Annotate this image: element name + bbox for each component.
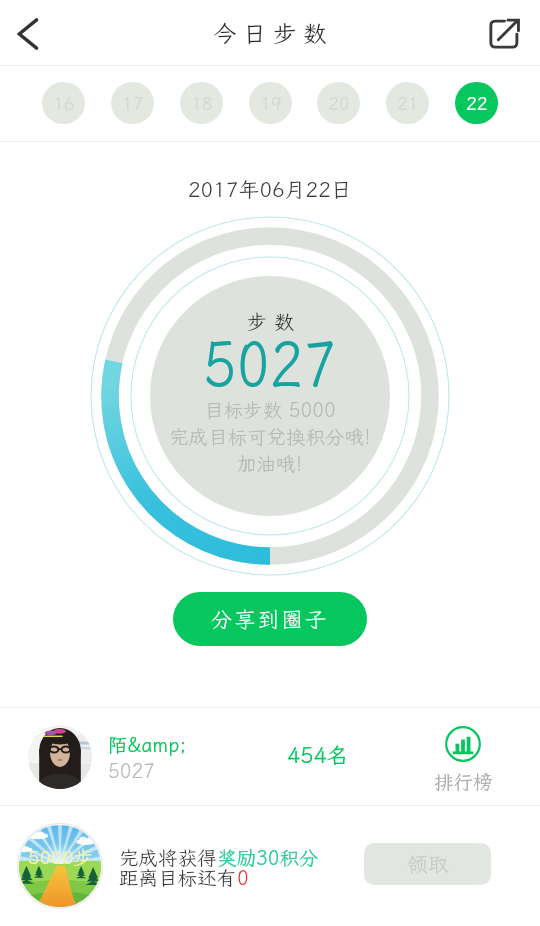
staticText: 18: [191, 91, 213, 115]
staticText: 加油哦!: [237, 451, 303, 477]
staticText: 步 数: [247, 308, 294, 334]
button[interactable]: 18: [180, 82, 223, 124]
staticText: 5027: [108, 758, 155, 784]
staticText: 奖励30积分: [217, 845, 319, 871]
staticText: 完成将获得: [119, 845, 217, 871]
button[interactable]: 17: [111, 82, 154, 124]
staticText: 目标步数 5000: [204, 397, 336, 423]
button[interactable]: Share: [478, 7, 531, 60]
staticText: 距离目标还有: [119, 865, 237, 891]
button[interactable]: 陌&amp;: [0, 708, 410, 805]
staticText: 16: [53, 91, 75, 115]
button[interactable]: 16: [42, 82, 85, 124]
button[interactable]: 领取: [364, 843, 491, 885]
staticText: 21: [397, 91, 419, 115]
staticText: 2017年06月22日: [188, 175, 352, 203]
staticText: 5000步: [28, 844, 93, 869]
button[interactable]: Back: [0, 7, 53, 60]
button[interactable]: 19: [249, 82, 292, 124]
button[interactable]: 分享到圈子: [173, 592, 367, 646]
staticText: 5027: [203, 320, 337, 404]
staticText: 陌&amp;: [108, 732, 187, 758]
staticText: 今日步数: [213, 18, 333, 49]
staticText: 19: [260, 91, 282, 115]
staticText: 22: [466, 91, 488, 115]
button[interactable]: 20: [317, 82, 360, 124]
staticText: 20: [328, 91, 350, 115]
staticText: 排行榜: [434, 769, 493, 795]
staticText: 领取: [407, 850, 449, 878]
staticText: 17: [122, 91, 144, 115]
staticText: 分享到圈子: [211, 605, 329, 633]
staticText: 0: [237, 865, 249, 891]
button[interactable]: 排行榜: [430, 726, 496, 795]
button[interactable]: 22: [455, 82, 498, 124]
button[interactable]: 21: [386, 82, 429, 124]
staticText: 完成目标可兑换积分哦!: [169, 424, 371, 450]
staticText: 454名: [287, 740, 349, 769]
